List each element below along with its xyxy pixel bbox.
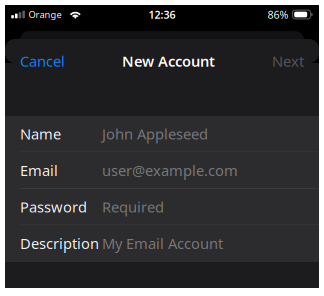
staticText: 12:36: [148, 7, 175, 22]
staticText: Next: [272, 51, 304, 71]
button[interactable]: Description: [5, 225, 319, 262]
button[interactable]: Name: [5, 116, 319, 152]
staticText: Orange: [29, 8, 62, 21]
staticText: Email: [20, 160, 58, 180]
button[interactable]: Password: [5, 189, 319, 225]
staticText: My Email Account: [102, 233, 223, 253]
staticText: 86%: [268, 7, 289, 22]
staticText: Password: [20, 197, 87, 216]
button[interactable]: Email: [5, 152, 319, 189]
staticText: Required: [102, 197, 164, 216]
staticText: Cancel: [20, 51, 65, 71]
staticText: New Account: [122, 51, 215, 71]
staticText: user@example.com: [102, 160, 238, 180]
staticText: Description: [20, 233, 99, 253]
button[interactable]: Cancel: [5, 39, 80, 83]
button[interactable]: Next: [257, 39, 319, 83]
staticText: John Appleseed: [102, 124, 208, 143]
staticText: Name: [20, 124, 61, 143]
